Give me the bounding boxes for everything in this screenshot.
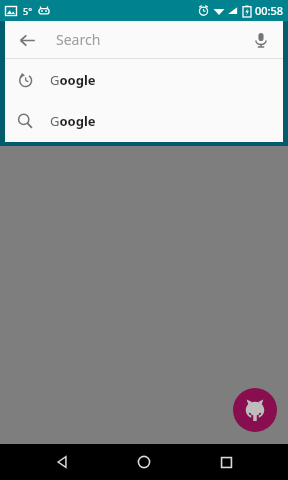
button[interactable]: GitHub <box>233 388 277 432</box>
button[interactable]: Recents <box>206 444 246 480</box>
staticText: 00:58 <box>255 3 284 18</box>
button[interactable]: Back <box>5 21 283 58</box>
button[interactable]: Google <box>5 100 283 141</box>
staticText: 5° <box>23 5 32 17</box>
button[interactable]: Voice search <box>247 26 275 54</box>
button[interactable]: Back <box>42 444 82 480</box>
button[interactable]: Back <box>13 26 41 54</box>
staticText: Google <box>50 112 96 130</box>
button[interactable]: Home <box>124 444 164 480</box>
staticText: Search <box>56 30 101 49</box>
staticText: Google <box>50 71 96 89</box>
button[interactable]: Google <box>5 59 283 100</box>
